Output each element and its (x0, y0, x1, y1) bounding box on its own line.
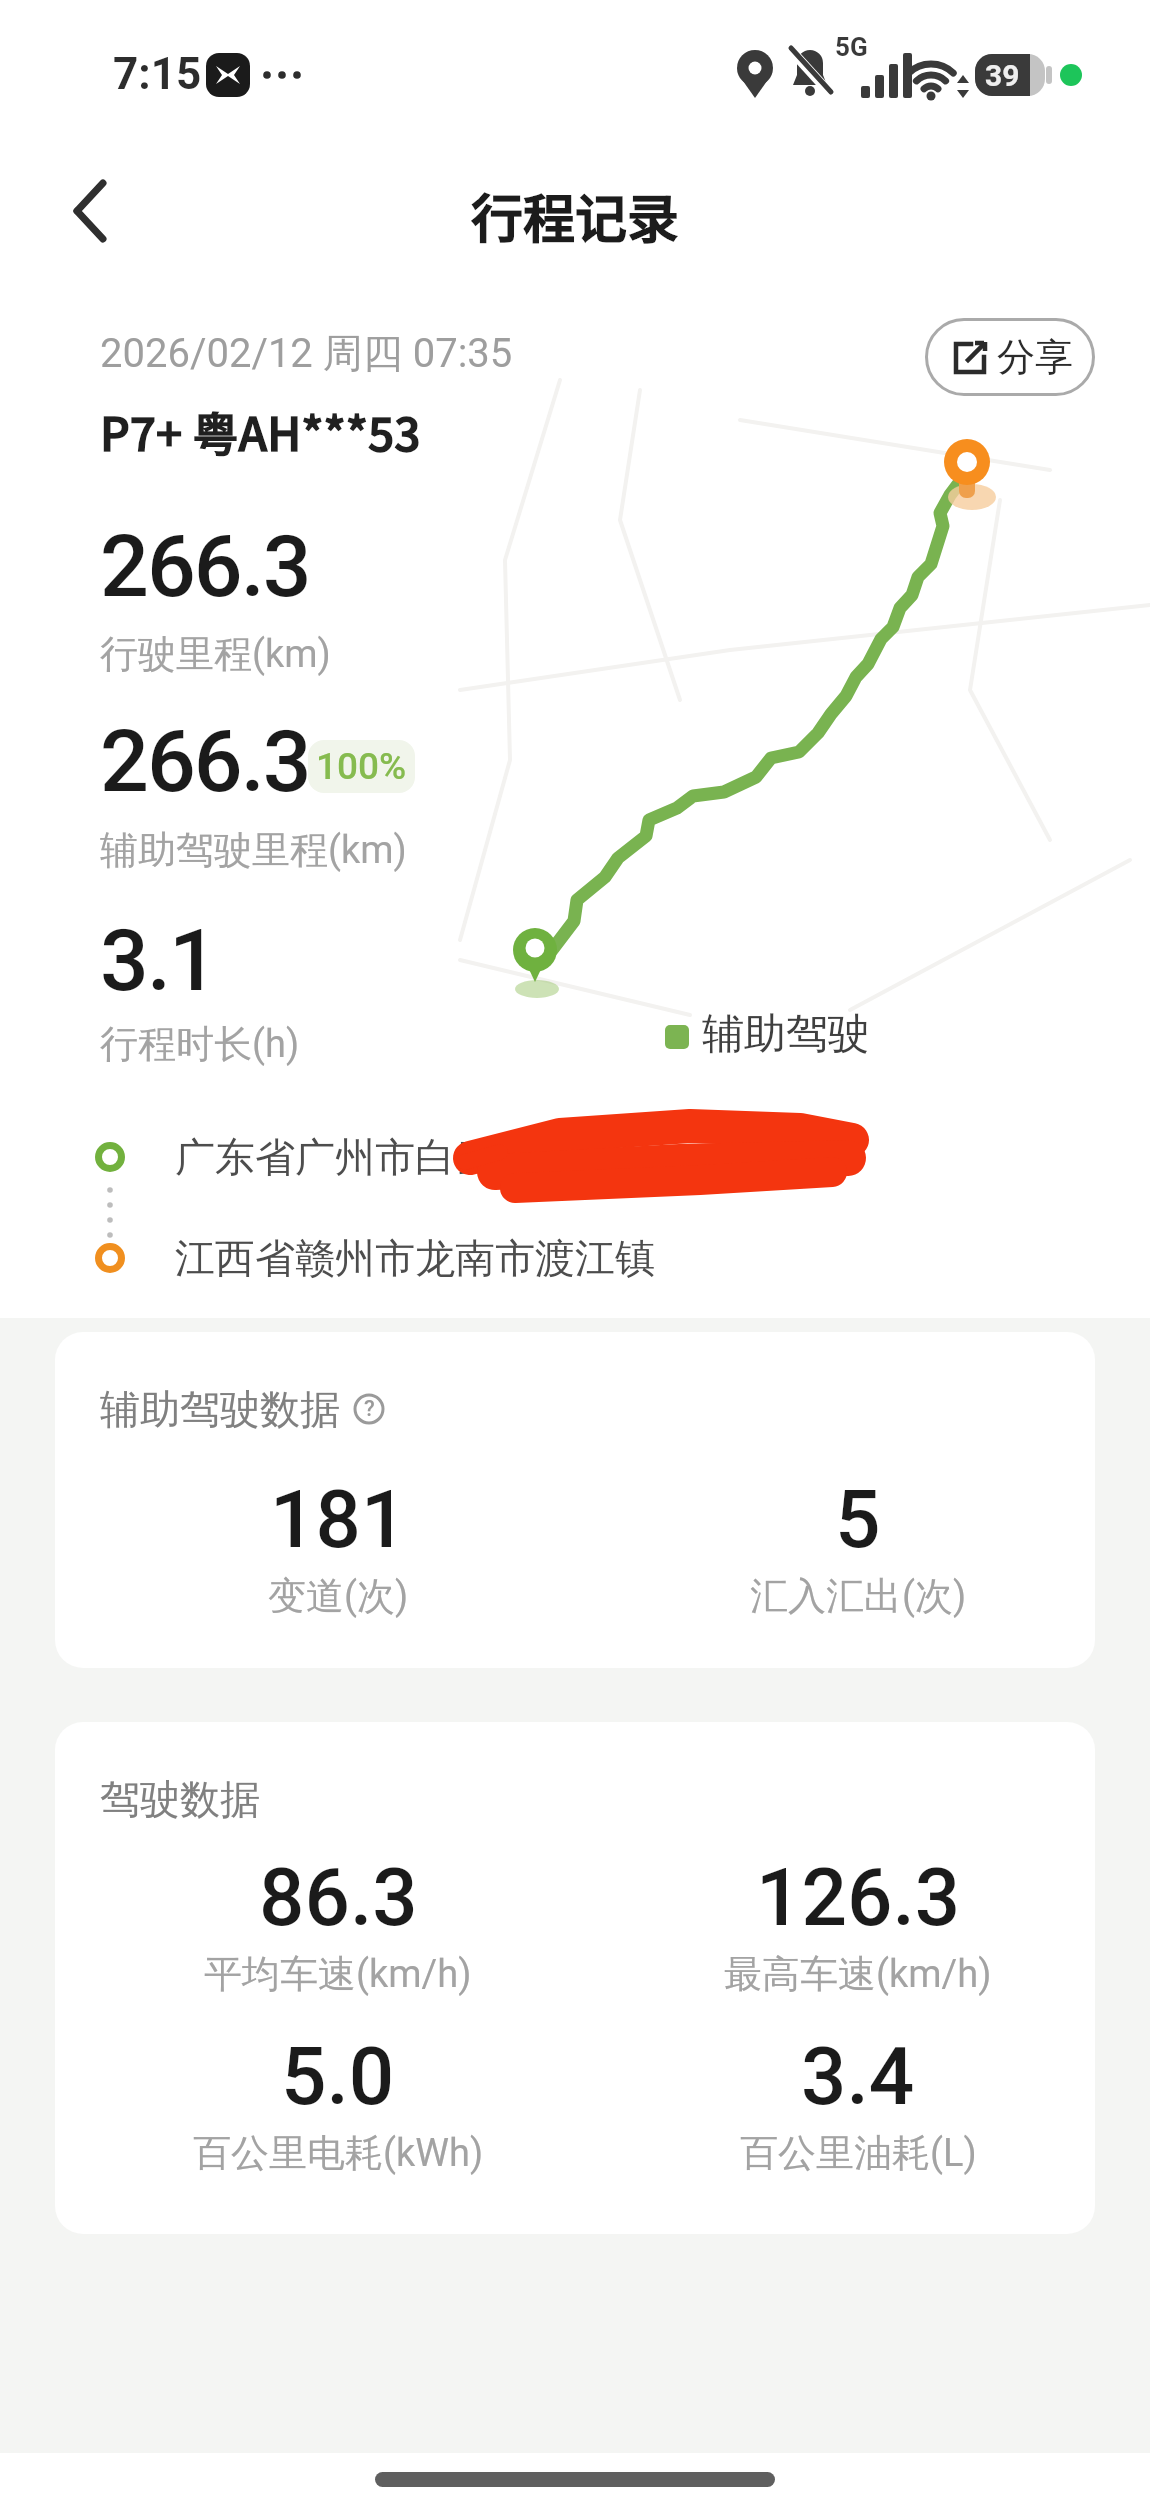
staticText: 变道(次) (268, 1572, 409, 1620)
staticText: 266.3 (100, 711, 310, 812)
staticText: 126.3 (756, 1851, 961, 1945)
staticText: 汇入汇出(次) (750, 1572, 967, 1620)
button[interactable]: ? (352, 1392, 386, 1426)
staticText: P7+ 粤AH***53 (100, 398, 421, 465)
staticText: 平均车速(km/h) (204, 1950, 472, 1998)
staticText: 百公里电耗(kWh) (193, 2129, 484, 2177)
staticText: 266.3 (100, 516, 310, 617)
staticText: 181 (270, 1473, 407, 1567)
staticText: 辅助驾驶里程(km) (100, 826, 407, 874)
staticText: 86.3 (259, 1851, 418, 1945)
staticText: 行驶里程(km) (100, 630, 331, 678)
staticText: 5.0 (281, 2030, 395, 2124)
staticText: 3.1 (100, 910, 216, 1011)
staticText: 5 (835, 1473, 881, 1567)
staticText: 行程记录 (471, 178, 680, 244)
staticText: 百公里油耗(L) (740, 2129, 977, 2177)
staticText: 分享 (997, 333, 1073, 381)
staticText: 3.4 (801, 2030, 915, 2124)
staticText: 行程时长(h) (100, 1020, 300, 1068)
staticText: 2026/02/12 周四 07:35 (100, 328, 513, 378)
staticText: 江西省赣州市龙南市渡江镇 (175, 1233, 655, 1283)
staticText: 100% (316, 745, 407, 788)
staticText: 驾驶数据 (100, 1774, 260, 1824)
staticText: 辅助驾驶数据 (100, 1384, 340, 1434)
staticText: 最高车速(km/h) (724, 1950, 992, 1998)
button[interactable]: 分享 (925, 318, 1095, 396)
staticText: 7:15 (113, 48, 202, 100)
button[interactable] (55, 175, 125, 245)
staticText: 39 (985, 58, 1020, 93)
staticText: 辅助驾驶 (702, 1008, 870, 1061)
staticText: 5G (835, 32, 868, 62)
staticText: ? (364, 1396, 375, 1422)
staticText: 广东省广州市白云区 (175, 1132, 535, 1182)
